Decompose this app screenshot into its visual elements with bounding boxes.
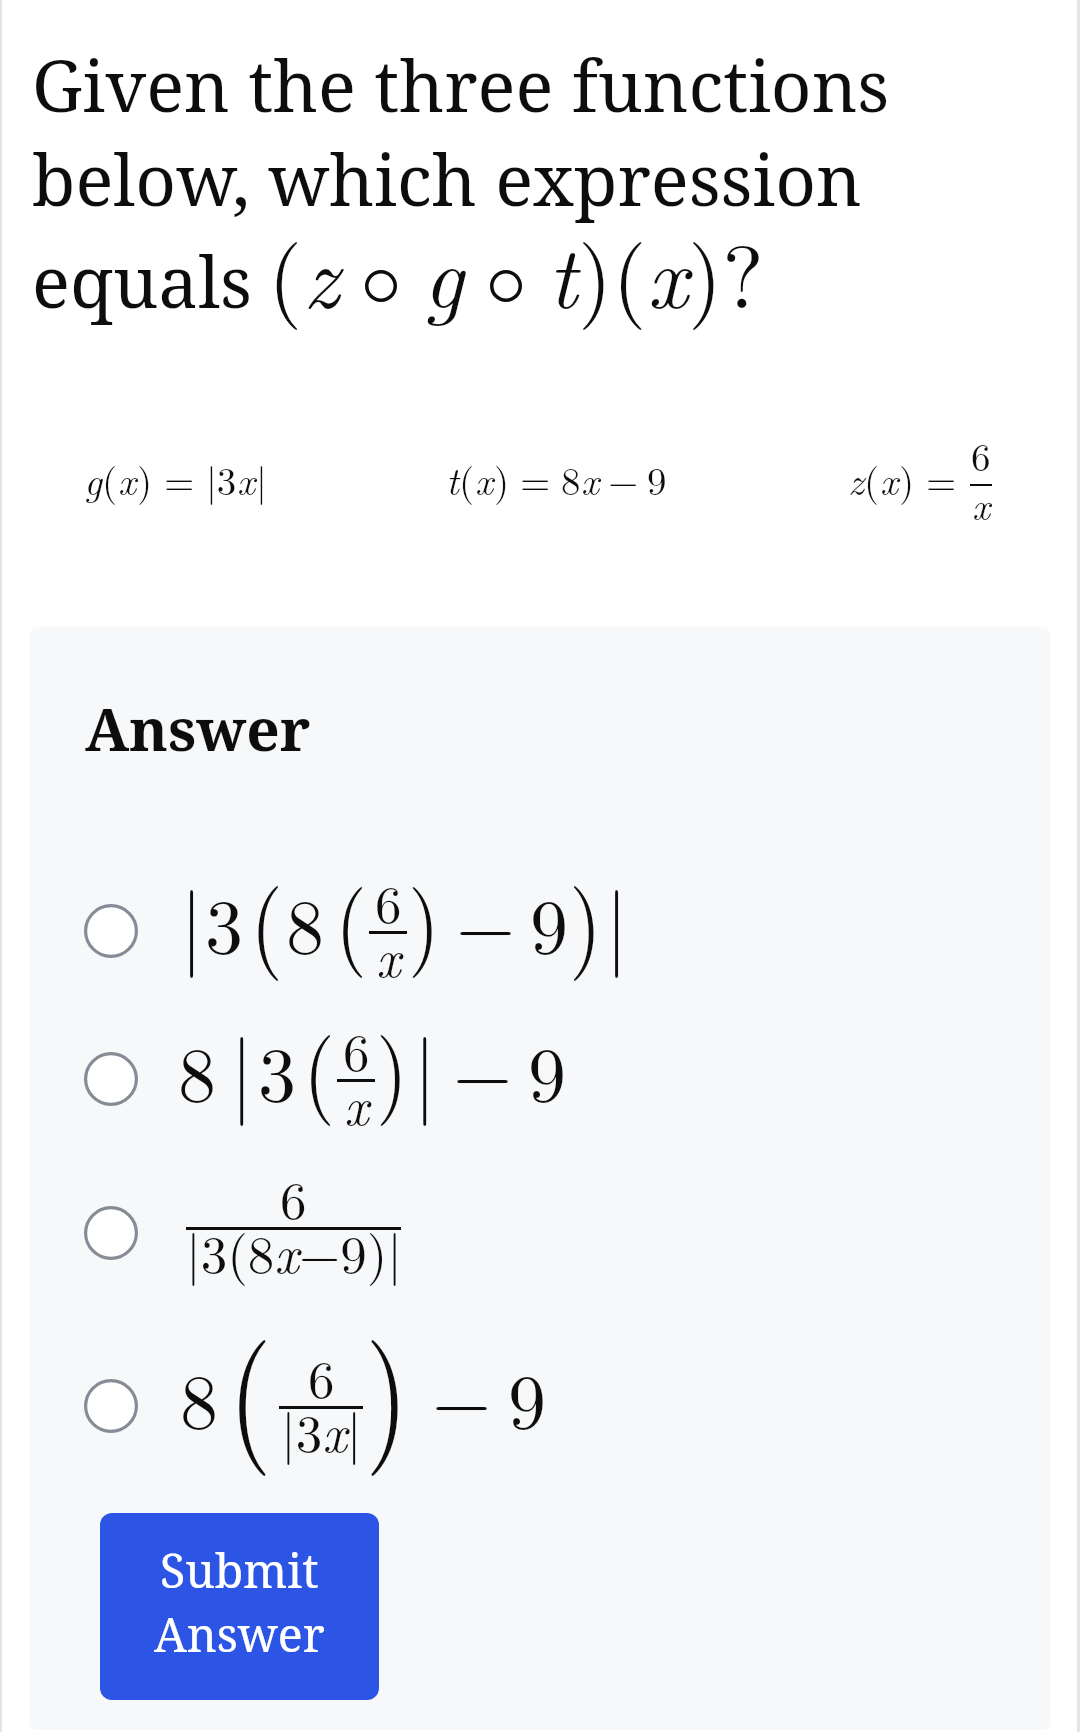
- staticText: −: [608, 451, 639, 506]
- staticText: −: [453, 1015, 513, 1123]
- staticText: (: [303, 1002, 335, 1129]
- staticText: |3: [206, 451, 237, 506]
- staticText: 6: [343, 1011, 370, 1086]
- staticText: x: [344, 1065, 369, 1140]
- staticText: |: [606, 856, 628, 982]
- staticText: 9: [530, 867, 568, 975]
- button[interactable]: Answer option 4: [30, 1320, 1050, 1490]
- staticText: 6: [308, 1338, 335, 1413]
- staticText: |3x|: [281, 1392, 362, 1467]
- staticText: (: [268, 209, 303, 334]
- staticText: |: [414, 1003, 436, 1130]
- staticText: 6: [280, 1159, 307, 1234]
- staticText: x: [376, 917, 401, 992]
- staticText: =: [520, 451, 551, 506]
- button[interactable]: Answer option 1: [30, 862, 1050, 1006]
- staticText: (: [250, 851, 284, 984]
- staticText: 9: [528, 1015, 566, 1123]
- staticText: )?: [688, 209, 764, 334]
- button[interactable]: Answer option 3: [30, 1157, 1050, 1320]
- staticText: |3(8x−9)|: [186, 1213, 401, 1288]
- staticText: (: [228, 1289, 272, 1481]
- staticText: x: [475, 451, 494, 506]
- staticText: 8: [178, 1015, 216, 1123]
- staticText: equals: [32, 232, 253, 328]
- staticText: 3: [258, 1015, 296, 1123]
- staticText: ): [376, 1002, 408, 1129]
- staticText: ): [494, 451, 510, 506]
- staticText: (: [335, 854, 367, 981]
- staticText: |: [181, 856, 203, 982]
- staticText: t: [548, 209, 578, 334]
- staticText: Answer: [154, 1602, 325, 1665]
- staticText: =: [164, 451, 195, 506]
- staticText: 9: [508, 1342, 546, 1450]
- staticText: =: [926, 451, 957, 506]
- staticText: 8: [286, 867, 324, 975]
- staticText: z: [848, 451, 864, 506]
- staticText: g: [84, 451, 102, 506]
- staticText: Given the three functions: [32, 36, 890, 132]
- staticText: 3: [205, 867, 243, 975]
- button[interactable]: Answer option 2: [30, 1006, 1050, 1157]
- staticText: ): [899, 451, 915, 506]
- staticText: g: [423, 209, 464, 334]
- staticText: x: [237, 451, 256, 506]
- staticText: 8: [561, 451, 581, 506]
- staticText: ): [365, 1289, 409, 1481]
- staticText: 9: [647, 451, 667, 506]
- staticText: ): [137, 451, 153, 506]
- staticText: x: [880, 451, 899, 506]
- staticText: z: [303, 209, 339, 334]
- staticText: Submit: [160, 1538, 319, 1601]
- staticText: −: [456, 867, 516, 975]
- staticText: x: [972, 476, 991, 531]
- staticText: x: [647, 209, 688, 334]
- button[interactable]: Submit: [100, 1513, 379, 1700]
- staticText: −: [432, 1342, 492, 1450]
- staticText: Answer: [85, 688, 311, 768]
- staticText: 6: [971, 427, 991, 482]
- staticText: x: [118, 451, 137, 506]
- staticText: x: [581, 451, 600, 506]
- staticText: 6: [375, 863, 402, 938]
- staticText: below, which expression: [32, 130, 862, 226]
- staticText: )(: [578, 209, 647, 334]
- staticText: ): [408, 854, 440, 981]
- staticText: 8: [180, 1342, 218, 1450]
- staticText: (: [864, 451, 880, 506]
- staticText: (: [102, 451, 118, 506]
- staticText: ): [569, 851, 603, 984]
- staticText: |: [256, 451, 267, 506]
- staticText: |: [231, 1003, 253, 1130]
- staticText: t: [446, 451, 459, 506]
- staticText: (: [459, 451, 475, 506]
